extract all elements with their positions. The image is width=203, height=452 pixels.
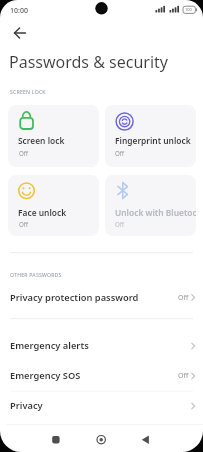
staticText: 100 <box>185 7 192 12</box>
staticText: Unlock with Bluetooth device <box>115 207 196 218</box>
staticText: Passwords & security <box>9 51 168 73</box>
staticText: SCREEN LOCK <box>10 88 46 95</box>
staticText: Off <box>115 149 125 157</box>
staticText: Privacy <box>10 399 43 412</box>
button[interactable] <box>105 105 196 167</box>
staticText: Off <box>19 149 29 157</box>
staticText: Off <box>19 220 29 228</box>
button[interactable] <box>8 175 99 236</box>
button[interactable] <box>40 428 68 450</box>
staticText: Privacy protection password <box>10 291 139 304</box>
staticText: Off <box>115 220 125 228</box>
button[interactable] <box>6 23 34 43</box>
button[interactable] <box>0 334 203 358</box>
staticText: 10:00 <box>10 6 28 16</box>
staticText: Fingerprint unlock <box>115 135 196 146</box>
staticText: Off <box>178 371 189 381</box>
button[interactable] <box>88 428 116 450</box>
staticText: Face unlock <box>18 207 99 218</box>
staticText: Off <box>178 293 189 303</box>
button[interactable] <box>0 285 203 310</box>
button[interactable] <box>0 394 203 418</box>
staticText: Emergency SOS <box>10 369 81 382</box>
button[interactable] <box>8 105 99 167</box>
button[interactable] <box>105 175 196 236</box>
button[interactable] <box>134 428 162 450</box>
staticText: OTHER PASSWORDS <box>10 271 62 278</box>
button[interactable] <box>0 364 203 388</box>
staticText: Emergency alerts <box>10 339 89 352</box>
staticText: Screen lock <box>18 135 99 146</box>
